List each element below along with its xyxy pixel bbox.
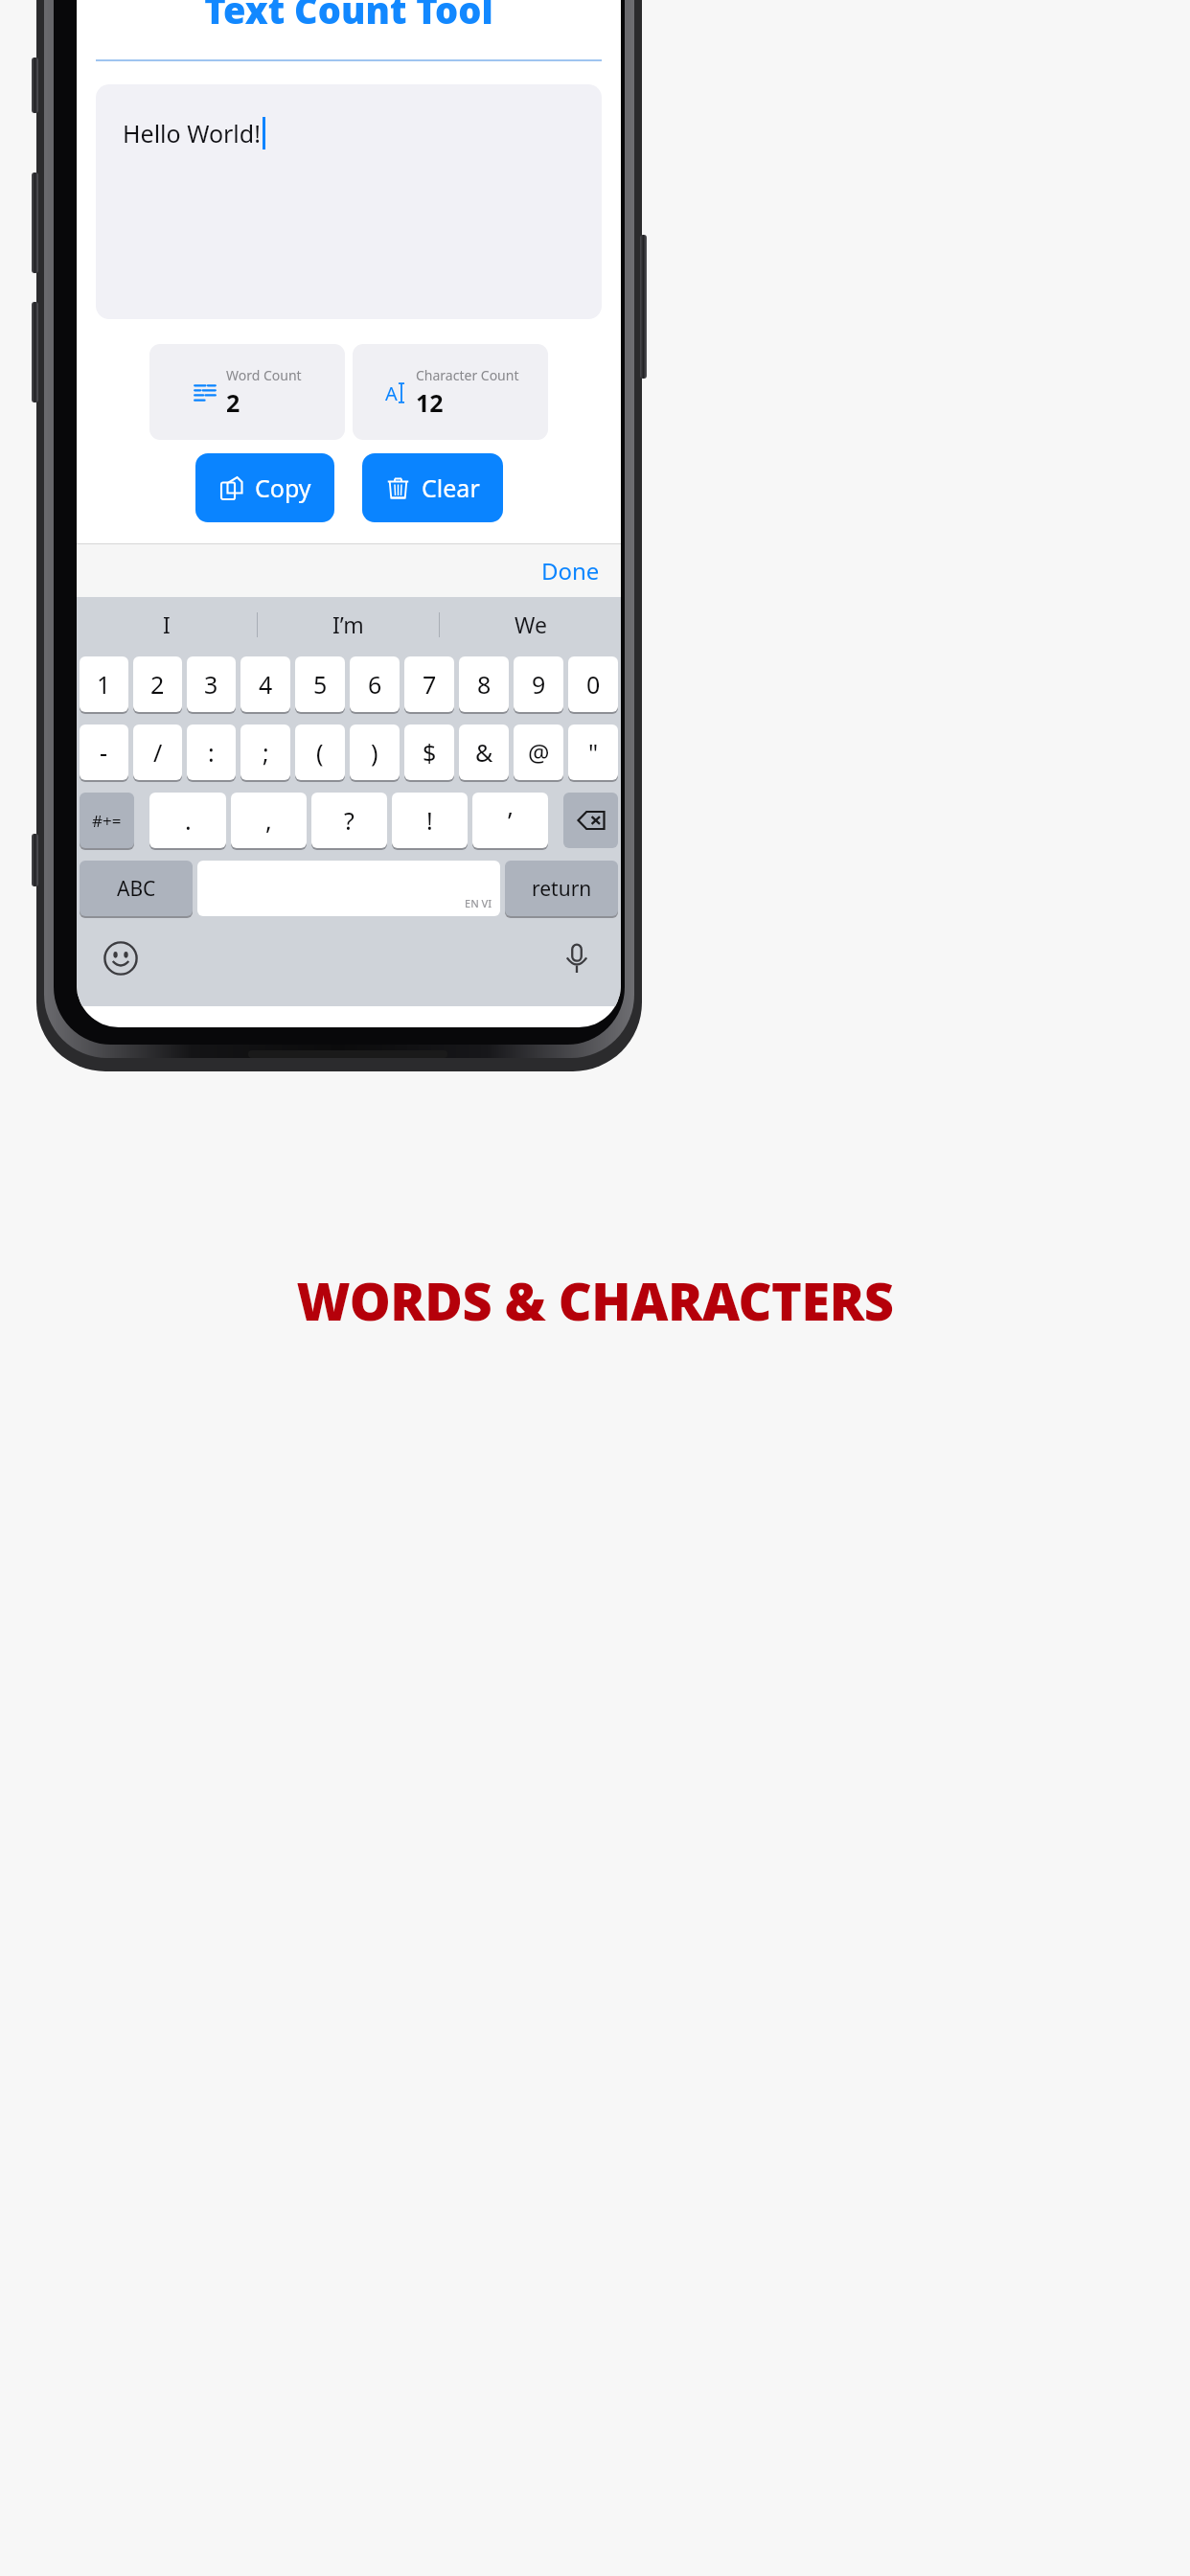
- button[interactable]: -: [80, 724, 128, 780]
- button[interactable]: 0: [568, 656, 618, 712]
- button[interactable]: ?: [311, 793, 387, 848]
- staticText: 0: [586, 668, 601, 701]
- staticText: #+=: [92, 810, 122, 832]
- button[interactable]: Emoji: [100, 937, 142, 979]
- button[interactable]: .: [149, 793, 226, 848]
- button[interactable]: &: [459, 724, 509, 780]
- staticText: return: [532, 875, 592, 903]
- button[interactable]: ABC: [80, 861, 193, 916]
- button[interactable]: 5: [295, 656, 345, 712]
- button[interactable]: return: [505, 861, 618, 916]
- staticText: ": [588, 736, 599, 769]
- staticText: Done: [541, 555, 600, 586]
- button[interactable]: 2: [133, 656, 182, 712]
- staticText: Copy: [255, 471, 311, 504]
- staticText: $: [423, 736, 437, 769]
- staticText: Hello World!: [123, 117, 261, 149]
- staticText: I: [163, 609, 171, 639]
- button[interactable]: Copy: [195, 453, 334, 522]
- button[interactable]: (: [295, 724, 345, 780]
- button[interactable]: A: [353, 344, 548, 440]
- staticText: Text Count Tool: [77, 0, 621, 34]
- button[interactable]: !: [392, 793, 468, 848]
- button[interactable]: /: [133, 724, 182, 780]
- staticText: 2: [226, 386, 240, 419]
- staticText: ABC: [117, 875, 156, 903]
- staticText: We: [515, 609, 547, 639]
- staticText: ’: [508, 804, 513, 837]
- button[interactable]: ,: [231, 793, 307, 848]
- staticText: 3: [204, 668, 218, 701]
- staticText: (: [316, 736, 324, 769]
- button[interactable]: Word Count: [149, 344, 345, 440]
- staticText: /: [153, 736, 163, 769]
- button[interactable]: ;: [240, 724, 290, 780]
- button[interactable]: 6: [350, 656, 400, 712]
- staticText: 2: [150, 668, 165, 701]
- staticText: @: [528, 736, 550, 769]
- button[interactable]: 7: [404, 656, 454, 712]
- staticText: WORDS & CHARACTERS: [0, 1265, 1190, 1336]
- other: Copy: [218, 475, 243, 500]
- button[interactable]: #+=: [80, 793, 134, 848]
- staticText: ,: [265, 804, 272, 837]
- button[interactable]: @: [514, 724, 563, 780]
- button[interactable]: ’: [472, 793, 548, 848]
- other: Clear: [385, 475, 410, 500]
- button[interactable]: 8: [459, 656, 509, 712]
- staticText: ): [371, 736, 378, 769]
- button[interactable]: Clear: [362, 453, 503, 522]
- staticText: Clear: [422, 471, 480, 504]
- button[interactable]: I: [77, 597, 257, 652]
- staticText: 6: [368, 668, 382, 701]
- staticText: .: [185, 804, 192, 837]
- staticText: 8: [477, 668, 492, 701]
- staticText: I’m: [332, 609, 364, 639]
- button[interactable]: 9: [514, 656, 563, 712]
- button[interactable]: Dictation: [556, 937, 598, 979]
- staticText: !: [426, 804, 433, 837]
- staticText: 7: [423, 668, 437, 701]
- button[interactable]: Hello World!: [96, 84, 602, 319]
- button[interactable]: I’m: [258, 597, 439, 652]
- button[interactable]: We: [440, 597, 621, 652]
- button[interactable]: :: [187, 724, 236, 780]
- staticText: ;: [263, 736, 269, 769]
- staticText: EN VI: [465, 896, 492, 910]
- button[interactable]: ": [568, 724, 618, 780]
- staticText: &: [475, 736, 493, 769]
- button[interactable]: 1: [80, 656, 128, 712]
- button[interactable]: ): [350, 724, 400, 780]
- button[interactable]: Done: [520, 547, 621, 594]
- staticText: Character Count: [416, 366, 519, 384]
- button[interactable]: $: [404, 724, 454, 780]
- staticText: 5: [313, 668, 328, 701]
- staticText: 4: [259, 668, 273, 701]
- button[interactable]: 3: [187, 656, 236, 712]
- staticText: ?: [344, 804, 355, 837]
- staticText: 9: [532, 668, 546, 701]
- staticText: A: [385, 380, 398, 405]
- staticText: Word Count: [226, 366, 302, 384]
- button[interactable]: 4: [240, 656, 290, 712]
- button[interactable]: Space: [197, 861, 500, 916]
- staticText: 12: [416, 386, 444, 419]
- staticText: 1: [97, 668, 111, 701]
- staticText: -: [100, 736, 108, 769]
- staticText: :: [208, 736, 215, 769]
- button[interactable]: Backspace: [563, 793, 618, 848]
